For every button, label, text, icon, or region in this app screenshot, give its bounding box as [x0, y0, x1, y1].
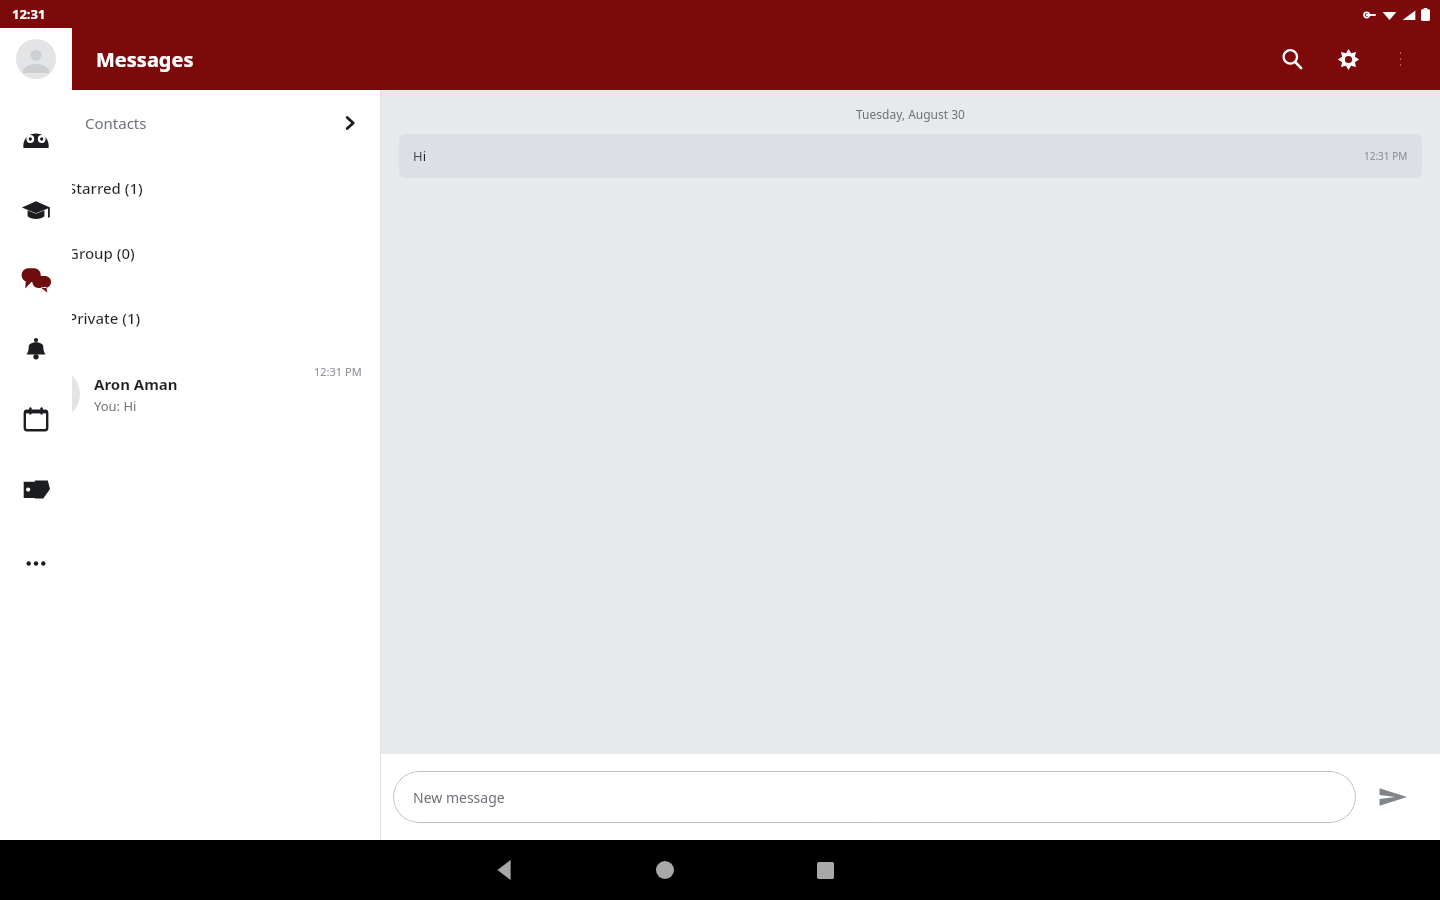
staticText: 12:31 PM [314, 364, 362, 379]
button[interactable]: Recent apps [770, 840, 880, 900]
staticText: You: Hi [94, 397, 137, 415]
button[interactable]: Home [610, 840, 720, 900]
button[interactable]: Profile [0, 28, 72, 90]
staticText: Contacts [85, 113, 147, 133]
staticText: 12:31 [12, 5, 46, 23]
staticText: New message [413, 788, 505, 807]
button[interactable]: Dashboard [0, 104, 72, 174]
button[interactable]: Contacts [0, 90, 380, 155]
button[interactable]: Back [450, 840, 560, 900]
button[interactable]: Group (0) [0, 220, 380, 285]
staticText: 12:31 PM [1364, 149, 1408, 163]
staticText: Private (1) [68, 308, 141, 328]
button[interactable]: Send [1356, 767, 1430, 827]
staticText: Group (0) [68, 243, 135, 263]
button[interactable]: Notifications [0, 314, 72, 384]
button[interactable]: Search [1264, 31, 1320, 87]
staticText: Tuesday, August 30 [381, 106, 1440, 122]
staticText: Starred (1) [68, 178, 143, 198]
button[interactable]: Tags [0, 454, 72, 524]
button[interactable]: Hi [399, 134, 1422, 178]
button[interactable]: Courses [0, 174, 72, 244]
button[interactable]: Settings [1320, 31, 1376, 87]
button[interactable]: More [0, 528, 72, 598]
button[interactable]: More options [1376, 35, 1424, 83]
staticText: Messages [96, 46, 194, 73]
button[interactable]: New message [393, 771, 1356, 823]
button[interactable]: Starred (1) [0, 155, 380, 220]
staticText: Hi [413, 147, 426, 165]
button[interactable]: Calendar [0, 384, 72, 454]
staticText: Aron Aman [94, 374, 178, 394]
button[interactable]: Messages [0, 244, 72, 314]
button[interactable]: Aron Aman [0, 350, 380, 438]
button[interactable]: Private (1) [0, 285, 380, 350]
